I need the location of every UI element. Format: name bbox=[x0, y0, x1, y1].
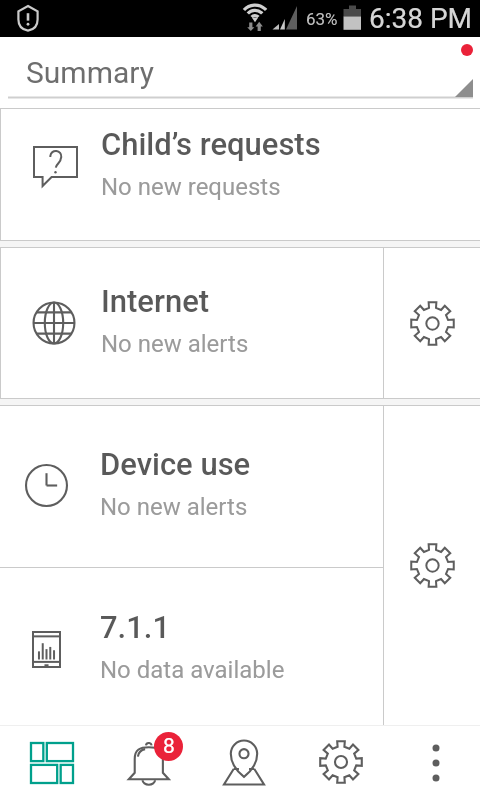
staticText: Device use bbox=[100, 446, 251, 482]
staticText: No data available bbox=[100, 656, 285, 684]
staticText: No new alerts bbox=[101, 330, 249, 358]
staticText: 7.1.1 bbox=[100, 609, 171, 645]
staticText: Summary bbox=[26, 55, 154, 90]
button[interactable]: Child’s requests bbox=[1, 109, 480, 240]
staticText: No new requests bbox=[101, 173, 281, 201]
button[interactable]: Dashboard bbox=[0, 726, 96, 800]
staticText: 8 bbox=[163, 734, 175, 759]
button[interactable]: Location bbox=[192, 726, 288, 800]
button[interactable]: Notifications bbox=[96, 726, 192, 800]
button[interactable]: Settings bbox=[288, 726, 384, 800]
button[interactable]: More options bbox=[384, 726, 480, 800]
button[interactable]: Internet bbox=[1, 248, 383, 398]
button[interactable]: Settings bbox=[384, 406, 480, 725]
staticText: 6:38 PM bbox=[369, 2, 473, 35]
staticText: 63% bbox=[306, 9, 338, 29]
staticText: Child’s requests bbox=[101, 126, 321, 162]
staticText: No new alerts bbox=[100, 493, 248, 521]
button[interactable]: Device use bbox=[0, 406, 383, 567]
button[interactable]: 7.1.1 bbox=[0, 568, 383, 725]
staticText: Internet bbox=[101, 283, 210, 319]
button[interactable]: Settings bbox=[384, 248, 480, 398]
